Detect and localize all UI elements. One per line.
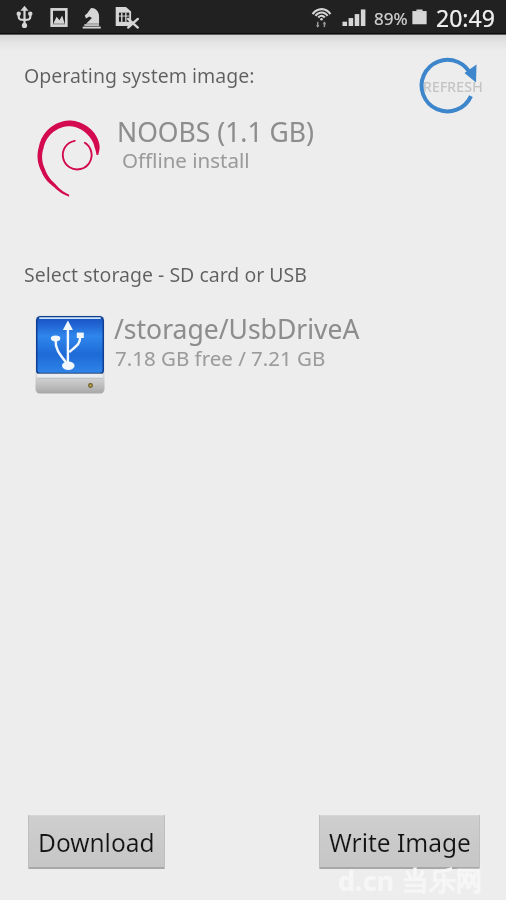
staticText: Select storage - SD card or USB bbox=[24, 261, 307, 288]
staticText: d.cn 当乐网 bbox=[338, 862, 483, 899]
staticText: /storage/UsbDriveA bbox=[114, 311, 360, 347]
button[interactable]: Write Image bbox=[319, 815, 480, 869]
button[interactable]: NOOBS (1.1 GB) bbox=[0, 108, 506, 204]
staticText: 7.18 GB free / 7.21 GB bbox=[115, 344, 326, 372]
staticText: Operating system image: bbox=[24, 62, 255, 89]
staticText: Offline install bbox=[122, 146, 250, 174]
button[interactable]: Download bbox=[28, 815, 165, 869]
staticText: NOOBS (1.1 GB) bbox=[117, 114, 314, 150]
staticText: REFRESH bbox=[423, 77, 483, 96]
button[interactable]: Refresh bbox=[414, 55, 486, 117]
staticText: 89% bbox=[374, 7, 408, 30]
staticText: Write Image bbox=[329, 826, 471, 859]
staticText: 20:49 bbox=[436, 2, 495, 33]
button[interactable]: /storage/UsbDriveA bbox=[0, 305, 506, 400]
staticText: Download bbox=[38, 826, 155, 859]
